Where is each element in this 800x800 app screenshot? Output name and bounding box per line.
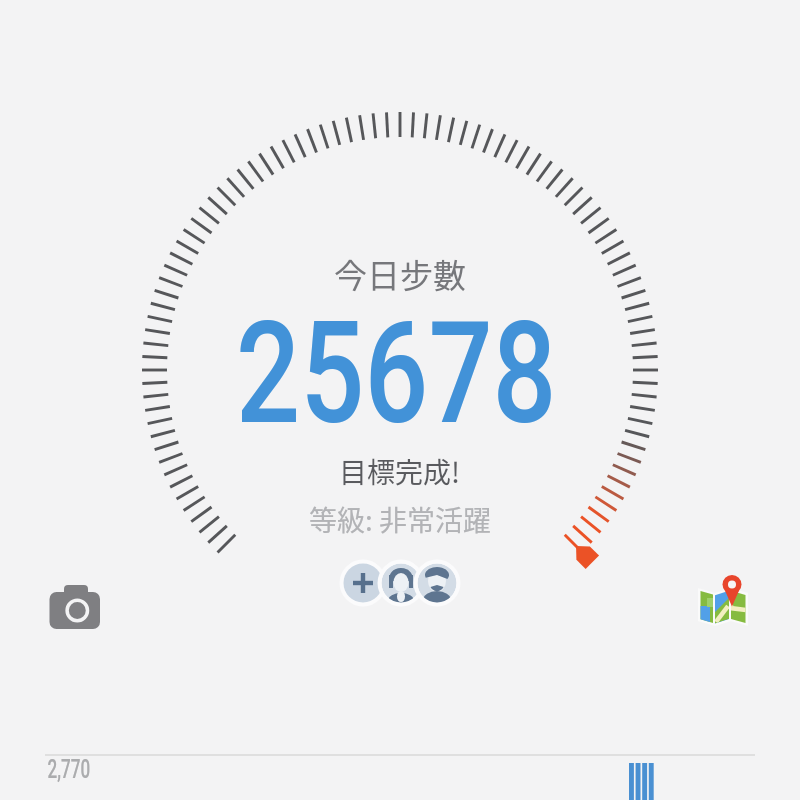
staticText: 2,770 (48, 754, 90, 784)
staticText: 目標完成! (339, 451, 461, 492)
staticText: 今日步數 (334, 250, 466, 298)
button[interactable] (690, 568, 756, 630)
button[interactable] (339, 559, 461, 607)
staticText: 25678 (236, 291, 557, 456)
staticText: 等級: 非常活躍 (309, 499, 492, 540)
button[interactable] (40, 578, 106, 638)
